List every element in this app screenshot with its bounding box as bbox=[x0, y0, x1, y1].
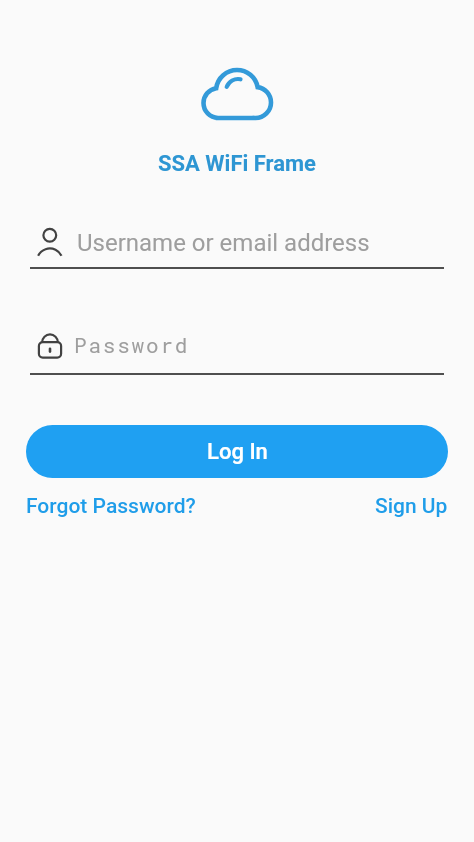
staticText: Sign Up bbox=[375, 494, 448, 519]
staticText: Username or email address bbox=[77, 229, 370, 257]
staticText: Password bbox=[74, 331, 190, 359]
button[interactable]: Sign Up bbox=[375, 494, 448, 519]
button[interactable]: Username or email address bbox=[30, 226, 444, 259]
staticText: Log In bbox=[207, 439, 268, 465]
staticText: SSA WiFi Frame bbox=[0, 151, 474, 177]
staticText: Forgot Password? bbox=[26, 494, 196, 519]
button[interactable]: Password bbox=[30, 330, 444, 360]
button[interactable]: Forgot Password? bbox=[26, 494, 196, 519]
button[interactable]: Log In bbox=[26, 425, 448, 478]
